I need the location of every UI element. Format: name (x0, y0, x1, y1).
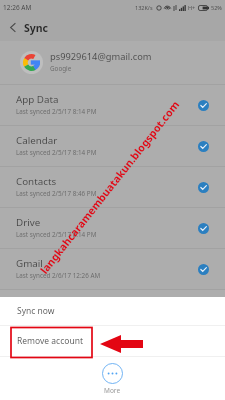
staticText: Gmail (16, 257, 43, 270)
button[interactable]: Back (0, 14, 24, 41)
staticText: Sync (24, 21, 49, 35)
staticText: Sync now (17, 305, 55, 317)
button[interactable]: Calendar (0, 126, 225, 166)
button[interactable]: ps9929614@gmail.com (0, 41, 225, 84)
button[interactable]: More (0, 357, 225, 400)
button[interactable]: Gmail (0, 249, 225, 289)
button[interactable]: Contacts (0, 167, 225, 207)
button[interactable]: Sync now (0, 297, 225, 325)
staticText: Last synced 2/5/17 8:14 PM (16, 148, 97, 157)
staticText: Remove account (17, 335, 83, 347)
button[interactable]: Drive (0, 208, 225, 248)
button[interactable]: App Data (0, 85, 225, 125)
staticText: Contacts (16, 175, 57, 188)
staticText: Last synced 2/5/17 8:46 PM (16, 189, 97, 198)
staticText: Last synced 2/5/17 8:14 PM (16, 230, 97, 239)
staticText: Last synced 2/5/17 8:14 PM (16, 107, 97, 116)
staticText: Calendar (16, 134, 58, 147)
staticText: More (104, 386, 121, 395)
staticText: 52% (211, 4, 222, 11)
staticText: 12:26 AM (3, 3, 32, 12)
staticText: ps9929614@gmail.com (50, 50, 152, 63)
staticText: langkahcaramembuatakun.blogspot.com (37, 98, 182, 277)
button[interactable]: Remove account (0, 326, 225, 356)
staticText: Google (50, 64, 72, 73)
staticText: Drive (16, 216, 41, 229)
staticText: App Data (16, 93, 59, 106)
staticText: H+ (188, 4, 196, 11)
staticText: 132K/s (135, 4, 153, 11)
staticText: Last synced 2/6/17 12:26 AM (16, 271, 101, 280)
